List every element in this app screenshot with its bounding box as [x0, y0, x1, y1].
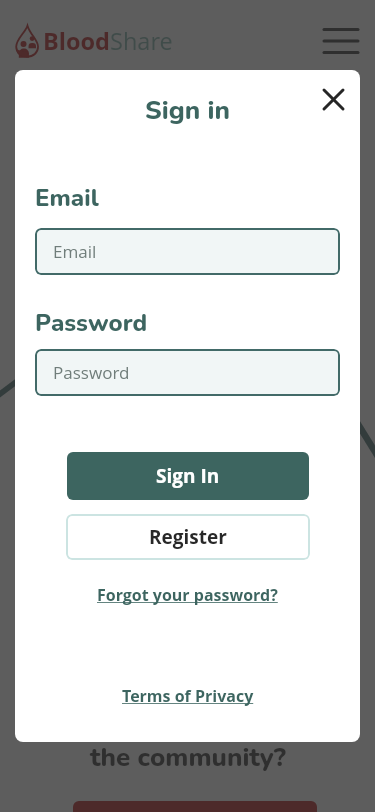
- staticText: Share: [110, 25, 173, 57]
- button[interactable]: Forgot your password?: [97, 584, 278, 606]
- staticText: Sign In: [156, 463, 220, 489]
- staticText: Blood: [43, 25, 110, 57]
- staticText: Password: [53, 361, 130, 384]
- button[interactable]: Open navigation menu: [321, 21, 361, 61]
- button[interactable]: Sign In: [67, 452, 309, 500]
- button[interactable]: Register: [66, 514, 310, 560]
- staticText: Forgot your password?: [97, 584, 278, 606]
- staticText: Email: [53, 240, 97, 263]
- staticText: Sign in: [15, 93, 360, 128]
- button[interactable]: Terms of Privacy: [122, 685, 254, 707]
- staticText: Register: [149, 524, 227, 550]
- staticText: Terms of Privacy: [122, 685, 254, 707]
- staticText: Password: [35, 307, 148, 340]
- staticText: the community?: [90, 740, 286, 775]
- button[interactable]: Join now: [73, 801, 317, 812]
- button[interactable]: Email: [35, 228, 340, 275]
- staticText: Email: [35, 182, 99, 215]
- button[interactable]: Close: [318, 84, 348, 114]
- button[interactable]: Password: [35, 349, 340, 396]
